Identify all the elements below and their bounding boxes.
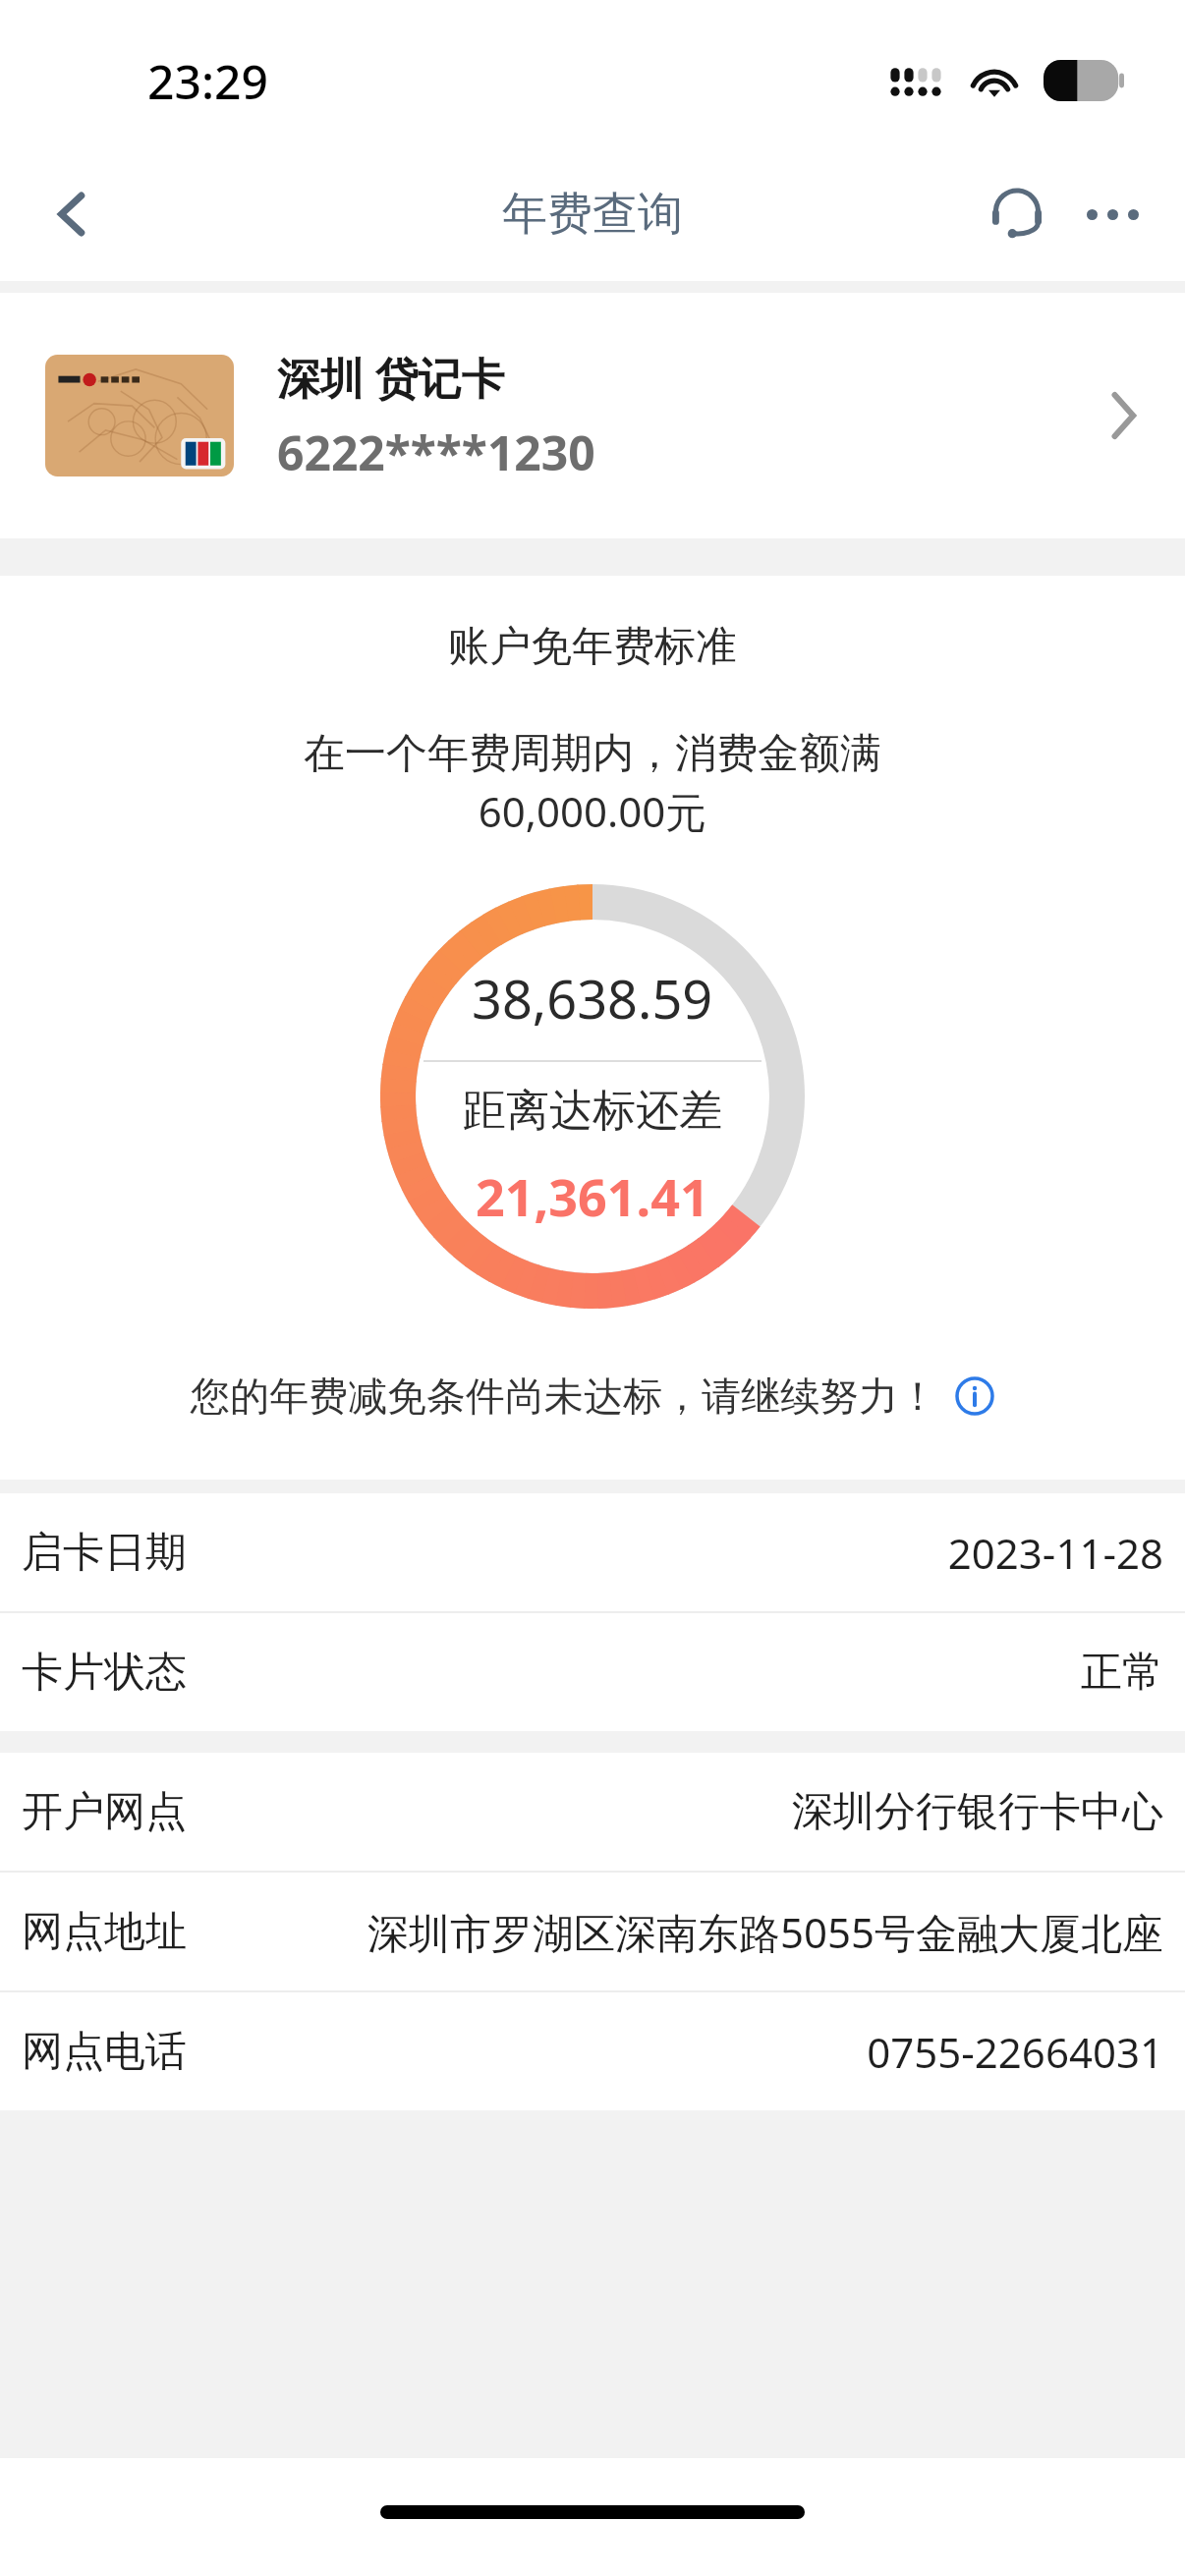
button[interactable]: 启卡日期 — [0, 1493, 1185, 1611]
button[interactable]: 您的年费减免条件尚未达标，请继续努力！ — [183, 1366, 1002, 1427]
button[interactable]: 网点电话 — [0, 1992, 1185, 2110]
other: Info — [955, 1376, 994, 1416]
button[interactable]: More options — [1073, 175, 1152, 253]
button[interactable]: 开户网点 — [0, 1753, 1185, 1871]
staticText: 距离达标还差 — [463, 1084, 722, 1138]
staticText: 深圳分行银行卡中心 — [792, 1786, 1163, 1838]
staticText: 正常 — [1081, 1647, 1163, 1699]
button[interactable]: 深圳 贷记卡 — [0, 293, 1185, 538]
staticText: 深圳 贷记卡 — [277, 348, 505, 407]
staticText: 0755-22664031 — [867, 2024, 1163, 2080]
button[interactable]: Back — [26, 167, 120, 261]
staticText: 6222****1230 — [277, 420, 595, 484]
staticText: 2023-11-28 — [947, 1525, 1163, 1581]
staticText: 您的年费减免条件尚未达标，请继续努力！ — [191, 1372, 937, 1421]
staticText: 启卡日期 — [22, 1527, 187, 1579]
button[interactable]: Customer service — [975, 172, 1059, 256]
staticText: 年费查询 — [502, 186, 683, 243]
staticText: 卡片状态 — [22, 1647, 187, 1699]
button[interactable]: 网点地址 — [0, 1873, 1185, 1990]
staticText: 在一个年费周期内，消费金额满 60,000.00元 — [304, 728, 881, 839]
staticText: 21,361.41 — [476, 1161, 709, 1231]
staticText: 网点电话 — [22, 2026, 187, 2078]
staticText: 深圳市罗湖区深南东路5055号金融大厦北座 — [367, 1904, 1163, 1960]
staticText: 账户免年费标准 — [448, 621, 737, 673]
staticText: 23:29 — [147, 49, 268, 113]
staticText: 网点地址 — [22, 1906, 187, 1958]
staticText: 开户网点 — [22, 1786, 187, 1838]
staticText: 38,638.59 — [472, 962, 713, 1035]
button[interactable]: 卡片状态 — [0, 1613, 1185, 1731]
